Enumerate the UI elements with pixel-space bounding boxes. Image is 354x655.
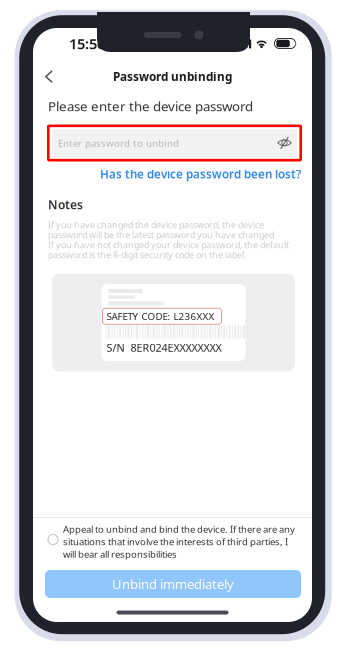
staticText: password will be the latest password you… <box>48 229 274 241</box>
staticText: Notes <box>48 196 83 212</box>
staticText: SAFETY CODE: L236XXX <box>106 310 214 323</box>
staticText: 15:56 <box>69 34 105 53</box>
button[interactable]: Has the device password been lost? <box>100 167 301 181</box>
staticText: If you have changed the device password,… <box>48 219 264 231</box>
staticText: situations that involve the interests of… <box>63 535 288 548</box>
staticText: will bear all responsibilities <box>63 548 177 560</box>
staticText: S/N 8ER024EXXXXXXXX <box>106 340 221 355</box>
staticText: Unbind immediately <box>112 575 234 593</box>
button[interactable]: Appeal to unbind and bind the device. If… <box>33 518 312 560</box>
staticText: password is the 8-digit security code on… <box>48 249 244 261</box>
staticText: Enter password to unbind <box>58 136 179 149</box>
staticText: Has the device password been lost? <box>100 166 301 182</box>
button[interactable]: Enter password to unbind <box>48 125 301 161</box>
staticText: Password unbinding <box>113 69 232 84</box>
button[interactable]: Unbind immediately <box>33 570 312 598</box>
staticText: Please enter the device password <box>48 97 253 115</box>
staticText: If you have not changed your device pass… <box>48 239 289 251</box>
staticText: Appeal to unbind and bind the device. If… <box>63 523 295 535</box>
button[interactable]: Back <box>33 62 65 90</box>
